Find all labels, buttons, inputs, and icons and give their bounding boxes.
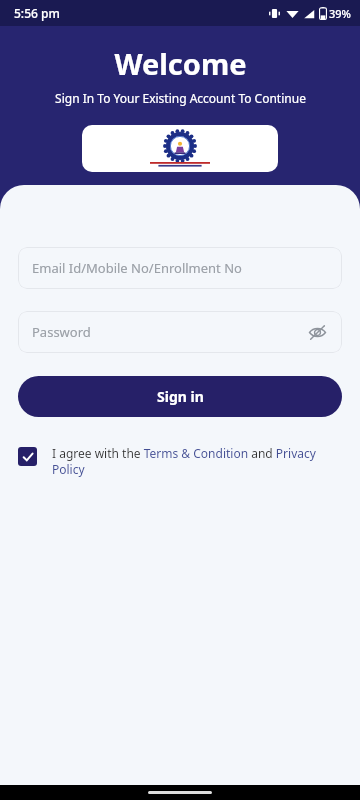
button[interactable]: Email Id/Mobile No/Enrollment No bbox=[18, 247, 342, 289]
staticText: Password bbox=[32, 323, 306, 341]
staticText: I agree with the Terms & Condition and P… bbox=[52, 445, 342, 478]
staticText: Sign in bbox=[157, 387, 204, 406]
button[interactable]: Show password bbox=[306, 321, 328, 343]
button[interactable]: Password bbox=[18, 311, 342, 353]
staticText: 39% bbox=[329, 6, 351, 21]
staticText: Sign In To Your Existing Account To Cont… bbox=[55, 90, 306, 106]
button[interactable]: Sign in bbox=[18, 376, 342, 417]
staticText: Welcome bbox=[114, 44, 247, 83]
staticText: Email Id/Mobile No/Enrollment No bbox=[32, 259, 328, 277]
staticText: 5:56 pm bbox=[14, 5, 60, 21]
other: Agree to terms checkbox bbox=[18, 447, 37, 466]
button[interactable]: Agree to terms checkbox bbox=[18, 445, 342, 478]
